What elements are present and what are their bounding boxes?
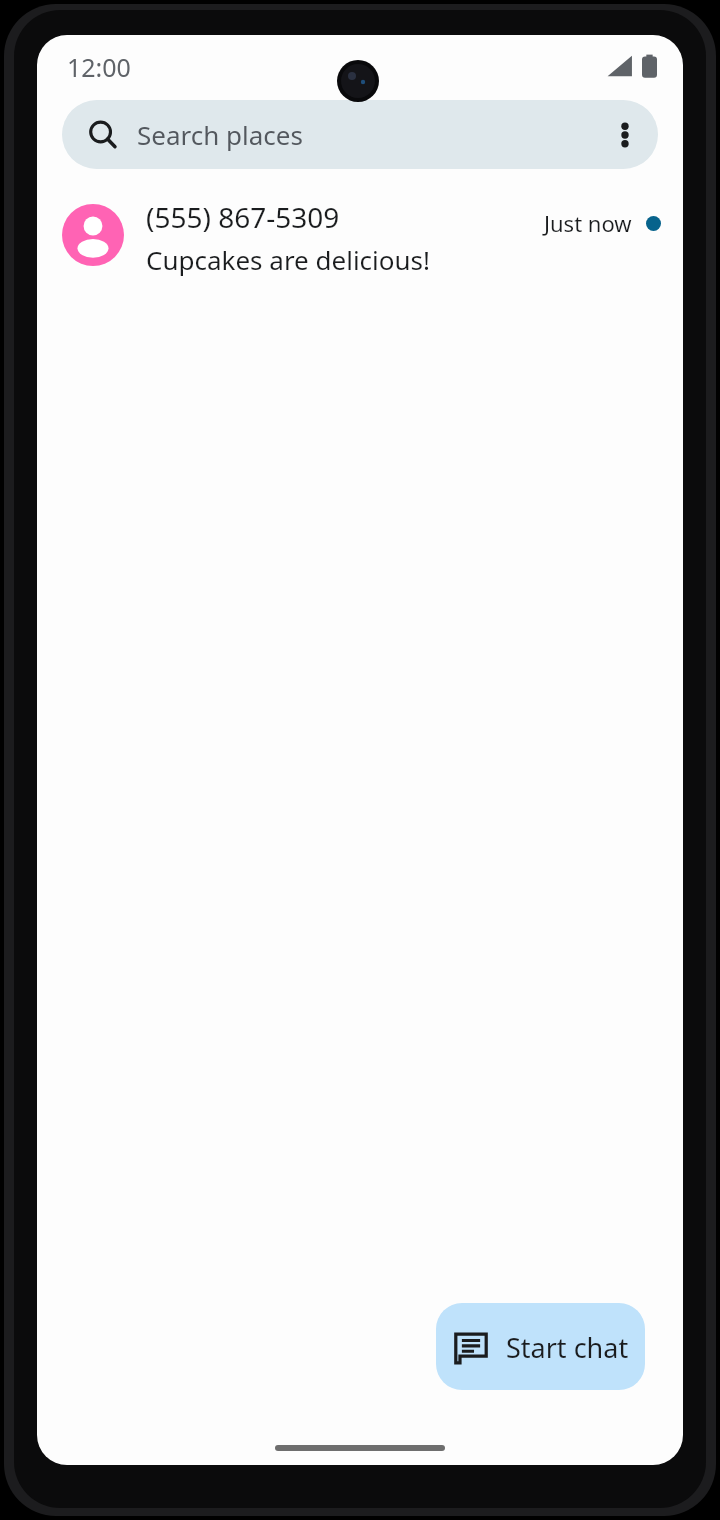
staticText: Cupcakes are delicious! — [146, 242, 431, 277]
staticText: Start chat — [506, 1329, 629, 1366]
button[interactable]: Search places — [62, 100, 658, 169]
staticText: (555) 867-5309 — [146, 198, 340, 236]
button[interactable]: (555) 867-5309 — [37, 190, 683, 285]
staticText: 12:00 — [67, 50, 131, 84]
button[interactable]: More options — [592, 102, 658, 168]
button[interactable]: Start chat — [436, 1303, 645, 1390]
staticText: Search places — [137, 117, 303, 152]
staticText: Just now — [544, 208, 632, 238]
